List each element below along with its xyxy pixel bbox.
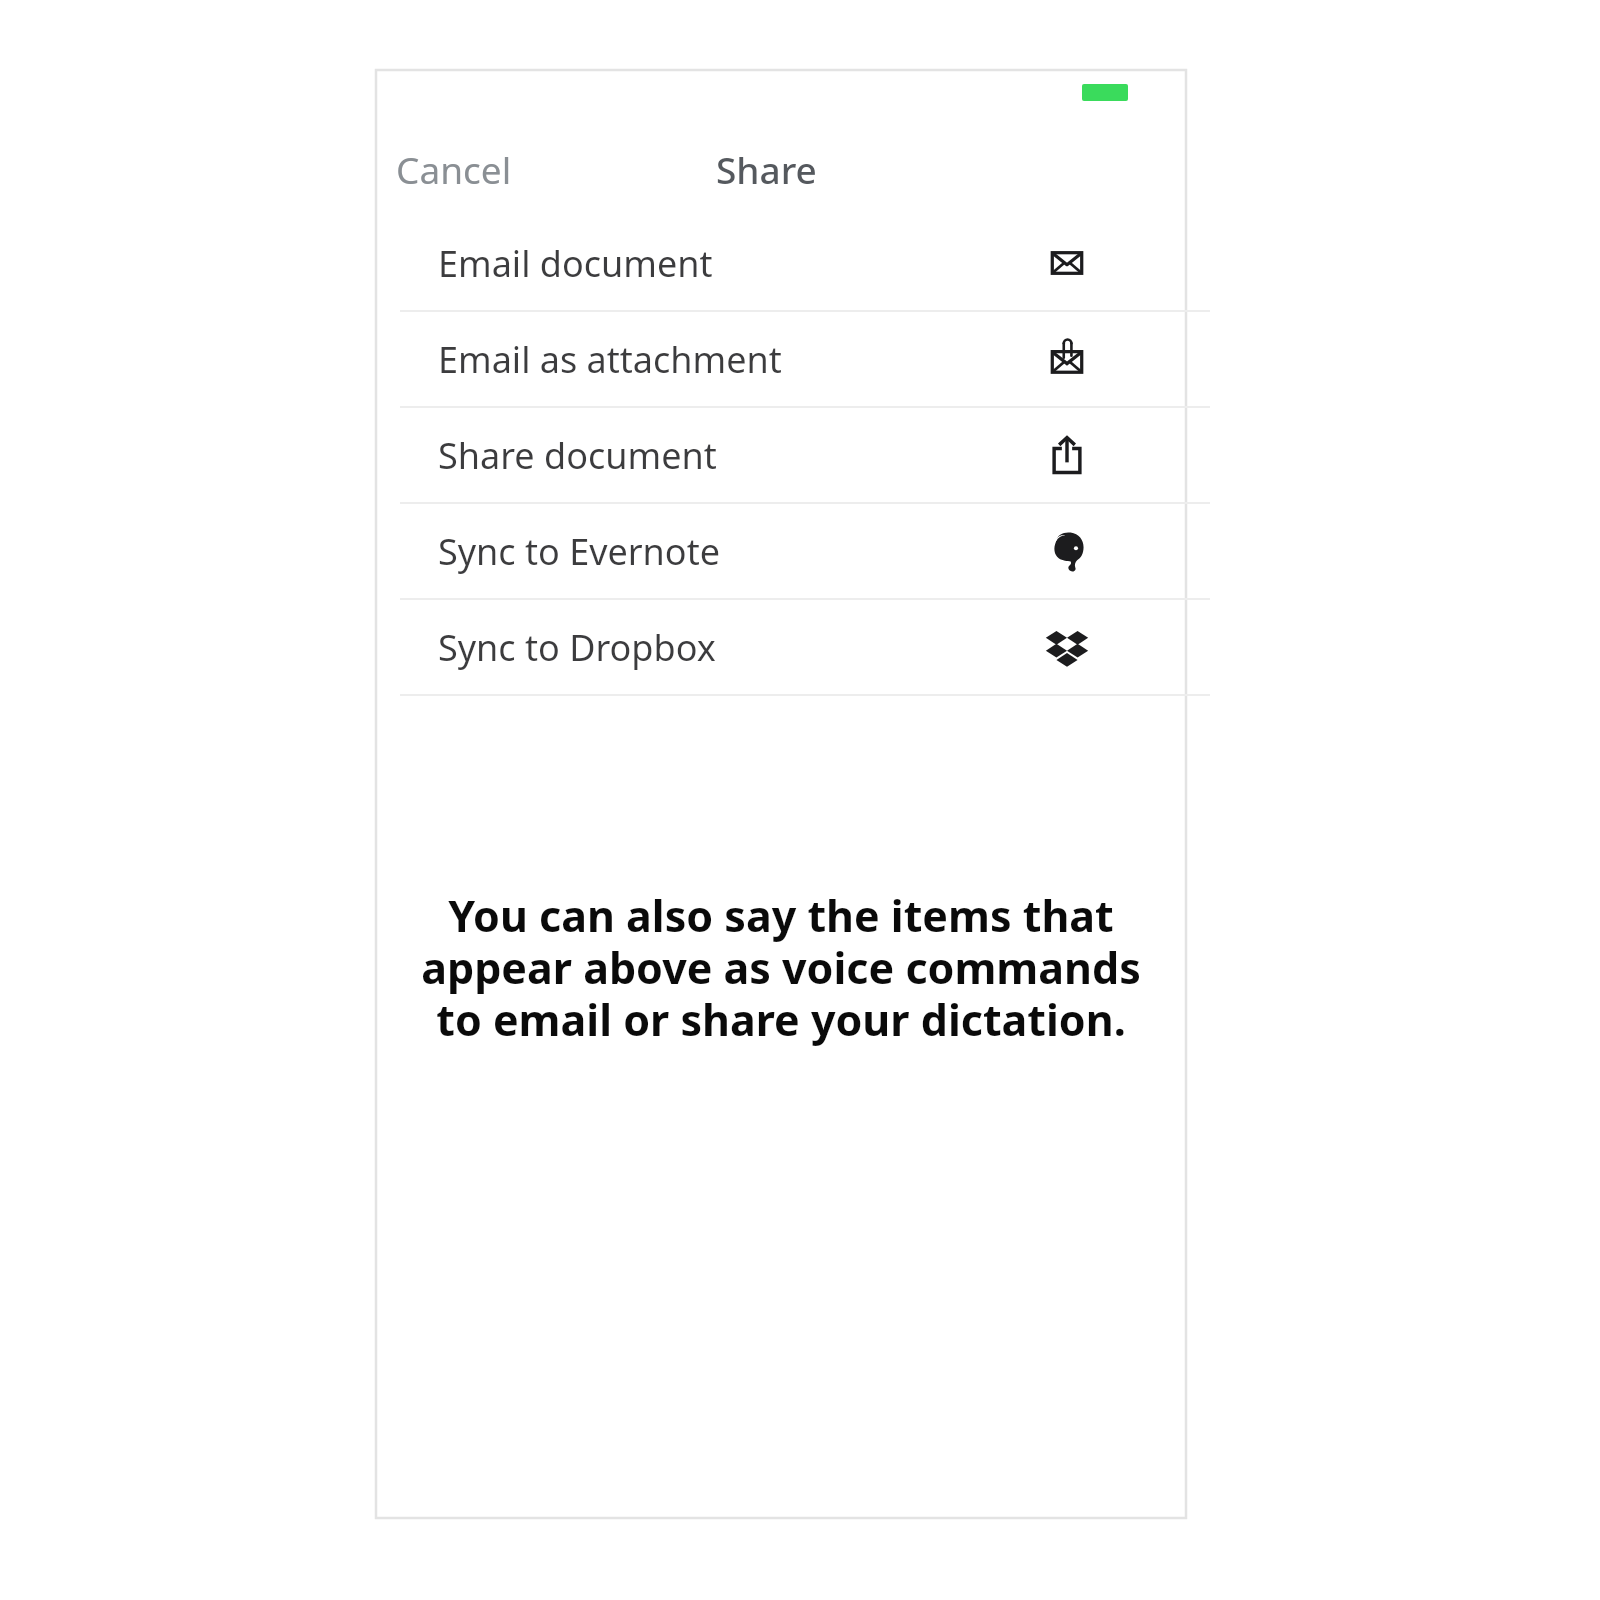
button[interactable]: Cancel bbox=[384, 136, 524, 202]
button[interactable]: Email as attachment bbox=[376, 312, 1186, 406]
staticText: You can also say the items that appear a… bbox=[404, 886, 1158, 1048]
button[interactable]: Share document bbox=[376, 408, 1186, 502]
staticText: Share document bbox=[438, 431, 717, 480]
staticText: Email as attachment bbox=[438, 335, 782, 384]
staticText: Share bbox=[716, 144, 817, 194]
staticText: Email document bbox=[438, 239, 713, 288]
staticText: Sync to Evernote bbox=[438, 527, 720, 576]
button[interactable]: Sync to Evernote bbox=[376, 504, 1186, 598]
staticText: Sync to Dropbox bbox=[438, 623, 716, 672]
button[interactable]: Email document bbox=[376, 216, 1186, 310]
button[interactable]: Share bbox=[704, 136, 829, 202]
staticText: Cancel bbox=[396, 144, 512, 194]
button[interactable]: Sync to Dropbox bbox=[376, 600, 1186, 694]
